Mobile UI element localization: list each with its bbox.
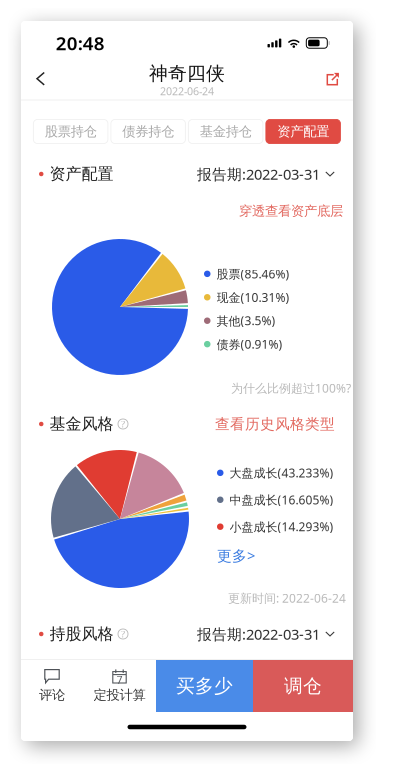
staticText: ? [121, 418, 125, 430]
button[interactable]: 穿透查看资产底层 [239, 203, 343, 219]
staticText: 为什么比例超过100%? [231, 380, 351, 396]
button[interactable]: Share [316, 62, 350, 96]
staticText: 更新时间: 2022-06-24 [228, 590, 346, 606]
staticText: 其他(3.5%) [216, 313, 275, 329]
button[interactable]: 报告期:2022-03-31 [197, 164, 335, 184]
staticText: 资产配置 [49, 164, 113, 184]
button[interactable]: 买多少 [156, 660, 253, 712]
staticText: 2022-06-24 [160, 84, 214, 98]
staticText: 20:48 [56, 31, 105, 55]
button[interactable]: Back [24, 62, 58, 96]
button[interactable]: 7 [83, 660, 156, 712]
staticText: 7 [116, 672, 122, 687]
button[interactable]: 报告期:2022-03-31 [197, 624, 335, 644]
staticText: 资产配置 [277, 123, 329, 140]
button[interactable]: 查看历史风格类型 [215, 415, 335, 433]
button[interactable]: 资产配置 [266, 119, 340, 143]
button[interactable]: 股票持仓 [33, 119, 108, 143]
button[interactable]: 更多> [217, 546, 255, 565]
staticText: 股票持仓 [45, 123, 97, 140]
staticText: 基金风格 [49, 414, 113, 434]
staticText: 调仓 [284, 674, 322, 697]
staticText: 持股风格 [49, 624, 113, 644]
button[interactable]: 调仓 [253, 660, 353, 712]
staticText: ? [121, 628, 125, 640]
button[interactable]: 债券持仓 [111, 119, 185, 143]
staticText: 定投计算 [93, 687, 145, 703]
staticText: 股票(85.46%) [216, 266, 289, 282]
staticText: 现金(10.31%) [216, 289, 289, 305]
staticText: 大盘成长(43.233%) [229, 465, 333, 481]
staticText: 评论 [39, 687, 65, 703]
staticText: 报告期:2022-03-31 [197, 164, 320, 184]
staticText: 神奇四侠 [149, 62, 225, 85]
staticText: 报告期:2022-03-31 [197, 624, 320, 644]
staticText: 小盘成长(14.293%) [229, 519, 333, 535]
staticText: 查看历史风格类型 [215, 415, 335, 433]
staticText: 基金持仓 [200, 123, 252, 140]
staticText: 债券(0.91%) [216, 336, 282, 352]
button[interactable]: 评论 [21, 660, 83, 712]
staticText: 更多> [217, 546, 255, 565]
staticText: 债券持仓 [122, 123, 174, 140]
button[interactable]: 基金持仓 [188, 119, 263, 143]
staticText: 穿透查看资产底层 [239, 203, 343, 219]
staticText: 买多少 [176, 674, 233, 697]
staticText: 中盘成长(16.605%) [229, 492, 333, 508]
